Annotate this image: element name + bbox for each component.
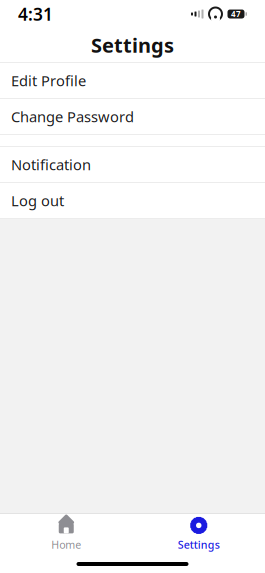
staticText: Log out xyxy=(11,191,64,210)
button[interactable]: Notification xyxy=(0,147,265,182)
staticText: Settings xyxy=(178,537,220,552)
staticText: Change Password xyxy=(11,107,134,126)
staticText: Notification xyxy=(11,155,91,174)
button[interactable]: Log out xyxy=(0,183,265,218)
staticText: Edit Profile xyxy=(11,71,86,90)
button[interactable]: Home xyxy=(0,514,132,554)
button[interactable]: Settings xyxy=(132,514,265,554)
staticText: Home xyxy=(51,537,81,552)
staticText: 47 xyxy=(231,9,241,19)
button[interactable]: Edit Profile xyxy=(0,63,265,98)
staticText: 4:31 xyxy=(18,2,53,25)
staticText: Settings xyxy=(91,32,174,58)
button[interactable]: Change Password xyxy=(0,99,265,134)
